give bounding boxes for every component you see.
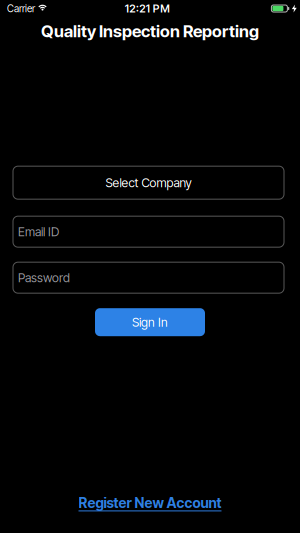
button[interactable]: Sign In [95,308,205,336]
staticText: Select Company [105,175,191,190]
button[interactable]: Email ID [0,216,300,247]
staticText: Register New Account [78,495,221,511]
staticText: Email ID [18,224,59,239]
staticText: 12:21 PM [125,2,170,15]
staticText: Carrier [7,2,35,15]
button[interactable]: Register New Account [78,495,221,511]
staticText: Password [18,270,70,285]
button[interactable]: Select Company [0,166,300,199]
staticText: Sign In [132,315,168,329]
button[interactable]: Password [0,262,300,293]
staticText: Quality Inspection Reporting [41,21,259,41]
